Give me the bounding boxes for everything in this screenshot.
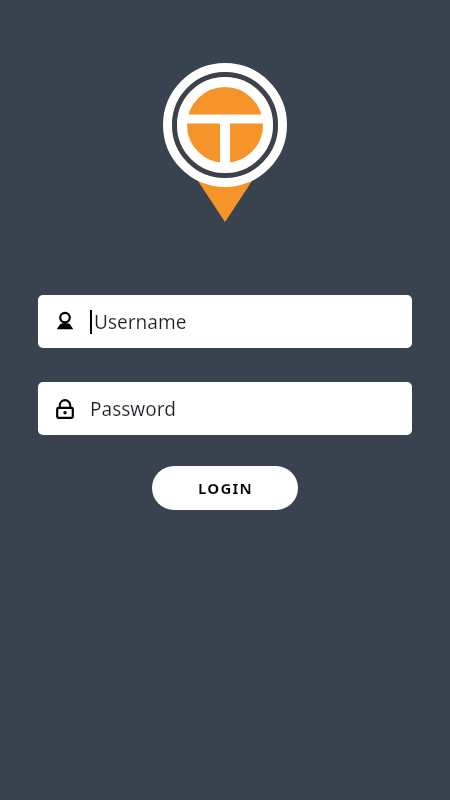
button[interactable]: LOGIN [152,466,298,510]
staticText: Username [94,309,187,335]
button[interactable]: Password [38,382,412,435]
staticText: LOGIN [198,478,253,498]
staticText: Password [90,396,176,422]
button[interactable]: Username [38,295,412,348]
